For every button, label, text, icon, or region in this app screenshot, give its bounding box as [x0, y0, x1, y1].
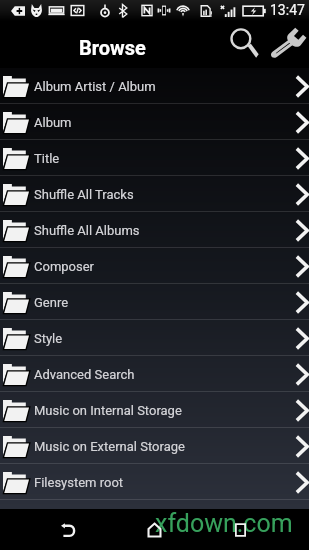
staticText: 13:47	[270, 2, 305, 18]
button[interactable]: Recents	[224, 514, 256, 546]
button[interactable]: Composer	[0, 248, 309, 284]
staticText: Style	[34, 331, 63, 346]
staticText: Browse	[79, 36, 146, 59]
staticText: Shuffle All Tracks	[34, 187, 134, 202]
staticText: Shuffle All Albums	[34, 223, 140, 238]
button[interactable]: Filesystem root	[0, 464, 309, 500]
button[interactable]: Music on Internal Storage	[0, 392, 309, 428]
staticText: Advanced Search	[34, 367, 135, 382]
staticText: xfdown.com	[155, 509, 293, 538]
button[interactable]: Album	[0, 104, 309, 140]
staticText: Music on Internal Storage	[34, 403, 182, 418]
staticText: Composer	[34, 259, 94, 274]
button[interactable]: Genre	[0, 284, 309, 320]
button[interactable]: Search	[222, 23, 264, 66]
button[interactable]: Music on External Storage	[0, 428, 309, 464]
button[interactable]: Home	[138, 514, 170, 546]
staticText: Filesystem root	[34, 475, 124, 490]
button[interactable]: Advanced Search	[0, 356, 309, 392]
button[interactable]: Settings	[265, 23, 309, 66]
staticText: Title	[34, 151, 60, 166]
button[interactable]: Shuffle All Albums	[0, 212, 309, 248]
staticText: Album	[34, 115, 72, 130]
staticText: Album Artist / Album	[34, 79, 156, 94]
button[interactable]: Style	[0, 320, 309, 356]
staticText: Music on External Storage	[34, 439, 185, 454]
button[interactable]: Album Artist / Album	[0, 68, 309, 104]
staticText: Genre	[34, 295, 69, 310]
button[interactable]: Back	[52, 514, 84, 546]
button[interactable]: Title	[0, 140, 309, 176]
button[interactable]: Shuffle All Tracks	[0, 176, 309, 212]
